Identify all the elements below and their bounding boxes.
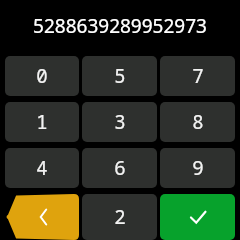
button[interactable]: 6 (82, 148, 157, 188)
staticText: 2 (114, 204, 126, 230)
button[interactable]: 1 (5, 102, 79, 142)
button[interactable]: 2 (82, 194, 157, 240)
staticText: 8 (192, 109, 204, 135)
staticText: 5288639289952973 (6, 13, 234, 39)
staticText: 5 (114, 63, 126, 89)
staticText: 3 (114, 109, 126, 135)
button[interactable]: 7 (160, 56, 235, 96)
staticText: 0 (36, 63, 48, 89)
button[interactable]: 5 (82, 56, 157, 96)
button[interactable]: Confirm (160, 194, 235, 240)
button[interactable]: 3 (82, 102, 157, 142)
staticText: 4 (36, 155, 48, 181)
staticText: 9 (192, 155, 204, 181)
staticText: 1 (36, 109, 48, 135)
button[interactable]: 4 (5, 148, 79, 188)
staticText: 7 (192, 63, 204, 89)
button[interactable]: 8 (160, 102, 235, 142)
staticText: 6 (114, 155, 126, 181)
button[interactable]: 9 (160, 148, 235, 188)
button[interactable]: 0 (5, 56, 79, 96)
button[interactable]: Backspace (5, 194, 79, 240)
